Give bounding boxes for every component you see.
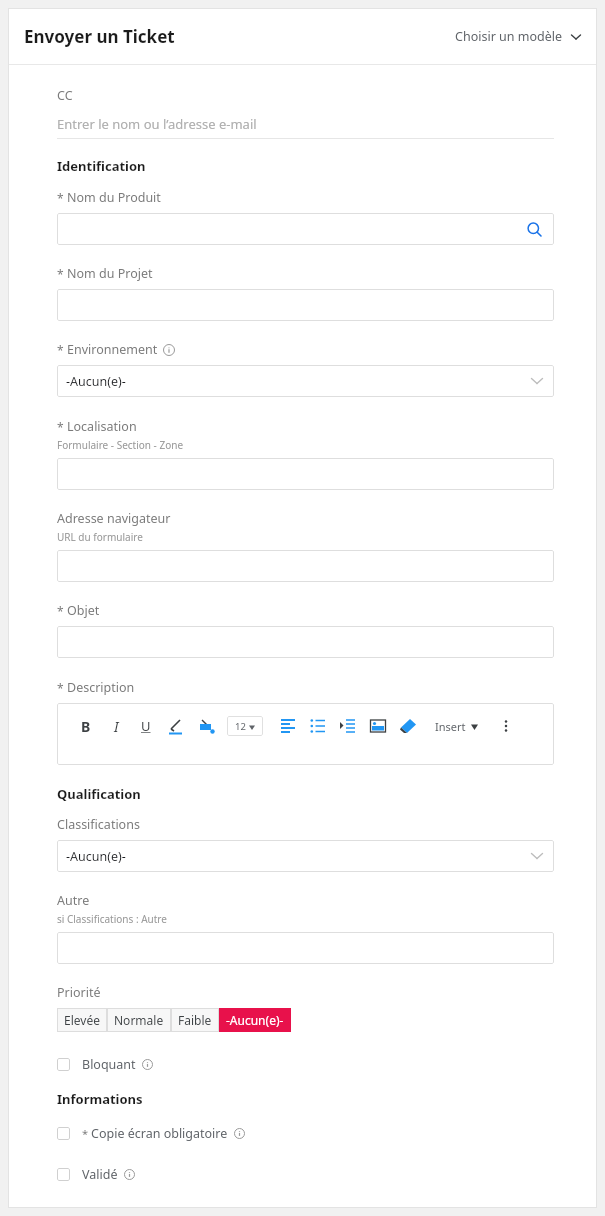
button[interactable]: Choisir un modèle [455,28,583,45]
button[interactable]: Bulleted list [303,711,333,741]
other: Information [124,1169,135,1180]
staticText: * [57,342,67,358]
button[interactable]: Normale [107,1008,171,1032]
staticText: * [57,266,67,282]
button[interactable]: Indent [333,711,363,741]
button[interactable]: -Aucun(e)- [57,840,554,872]
button[interactable]: Faible [171,1008,219,1032]
other: Search [527,222,542,237]
staticText: URL du formulaire [57,530,143,544]
staticText: -Aucun(e)- [226,1012,284,1028]
staticText: Entrer le nom ou l’adresse e-mail [57,115,257,133]
staticText: Copie écran obligatoire [91,1125,228,1142]
staticText: Formulaire - Section - Zone [57,438,184,452]
staticText: B [81,717,91,736]
other: Information [163,344,175,356]
button[interactable]: Bloquant [57,1056,554,1073]
other: Information [234,1128,245,1139]
staticText: * [57,680,67,696]
button[interactable]: Underline [131,711,161,741]
staticText: Insert [435,719,466,734]
staticText: Envoyer un Ticket [24,25,175,48]
button[interactable]: Insert image [363,711,393,741]
staticText: Autre [57,892,90,909]
button[interactable]: 12 [227,716,263,736]
button[interactable]: Fill color [191,711,221,741]
button[interactable]: Entrer le nom ou l’adresse e-mail [57,113,554,135]
staticText: Bloquant [82,1056,136,1073]
staticText: Description [67,679,135,696]
staticText: CC [57,87,73,104]
button[interactable]: More options [494,714,518,738]
staticText: -Aucun(e)- [66,848,126,865]
staticText: Nom du Produit [67,189,161,206]
button[interactable]: Elevée [57,1008,107,1032]
button[interactable]: Clear formatting [393,711,423,741]
button[interactable] [57,626,554,658]
staticText: U [141,717,151,735]
staticText: * [57,419,67,435]
staticText: Nom du Projet [67,265,153,282]
staticText: -Aucun(e)- [66,373,126,390]
staticText: * [82,1126,91,1141]
staticText: Priorité [57,984,101,1001]
staticText: si Classifications : Autre [57,912,167,926]
staticText: Localisation [67,418,137,435]
button[interactable]: Bold [71,711,101,741]
button[interactable]: Validé [57,1166,554,1183]
staticText: Normale [114,1012,164,1028]
staticText: I [114,717,119,736]
button[interactable]: Italic [101,711,131,741]
staticText: Choisir un modèle [455,28,563,45]
staticText: Qualification [57,785,141,803]
button[interactable] [57,458,554,490]
button[interactable]: Text color [161,711,191,741]
button[interactable]: Search [57,213,554,245]
staticText: * [57,190,67,206]
button[interactable]: Align left [273,711,303,741]
button[interactable]: * [57,1125,554,1142]
staticText: Identification [57,157,146,175]
other: Information [142,1059,153,1070]
button[interactable]: -Aucun(e)- [219,1008,291,1032]
staticText: Validé [82,1166,118,1183]
button[interactable] [57,289,554,321]
staticText: Classifications [57,816,140,833]
staticText: Informations [57,1090,143,1108]
button[interactable] [57,550,554,582]
button[interactable]: Insert [435,719,478,734]
staticText: Objet [67,602,100,619]
staticText: Adresse navigateur [57,510,171,527]
button[interactable]: -Aucun(e)- [57,365,554,397]
button[interactable] [57,932,554,964]
staticText: Elevée [64,1012,100,1028]
staticText: Environnement [67,341,158,358]
staticText: Faible [178,1012,212,1028]
staticText: * [57,603,67,619]
staticText: 12 [235,720,246,733]
